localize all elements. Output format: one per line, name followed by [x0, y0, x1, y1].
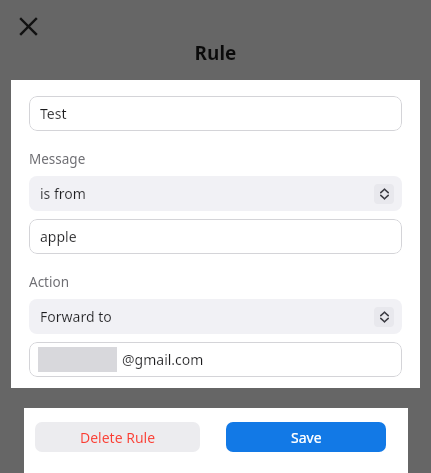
button[interactable]: Delete Rule [35, 422, 200, 452]
other: Open picker [374, 307, 394, 327]
other: Open picker [374, 184, 394, 204]
button[interactable]: Save [226, 422, 386, 452]
staticText: is from [40, 184, 86, 203]
button[interactable]: is from [29, 176, 402, 211]
staticText: @gmail.com [122, 350, 204, 369]
button[interactable]: @gmail.com [29, 342, 402, 377]
button[interactable]: apple [29, 219, 402, 254]
staticText: Rule [0, 40, 431, 66]
button[interactable]: Forward to [29, 299, 402, 334]
staticText: Test [40, 104, 67, 123]
staticText: Action [29, 273, 69, 291]
staticText: apple [40, 227, 77, 246]
button[interactable]: Test [29, 96, 402, 131]
staticText: Save [291, 428, 322, 447]
button[interactable]: Close [13, 11, 43, 41]
staticText: Message [29, 150, 86, 168]
staticText: Delete Rule [80, 428, 156, 447]
staticText: Forward to [40, 307, 112, 326]
